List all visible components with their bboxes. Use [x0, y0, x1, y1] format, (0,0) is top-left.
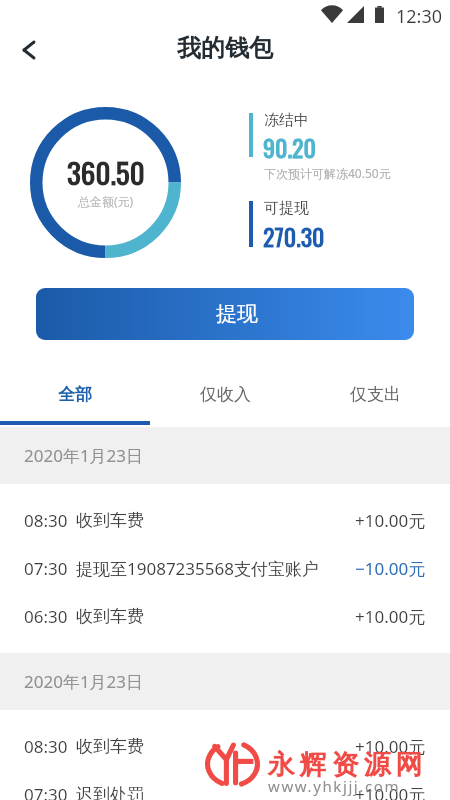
staticText: 仅支出	[350, 384, 401, 405]
button[interactable]: 提现	[36, 288, 414, 340]
staticText: 迟到处罚	[76, 784, 144, 800]
staticText: +10.00元	[355, 783, 426, 800]
button[interactable]: 06:30	[0, 592, 450, 640]
staticText: 可提现	[264, 199, 309, 218]
staticText: 360.50	[67, 150, 145, 193]
staticText: 冻结中	[264, 111, 309, 130]
button[interactable]: 08:30	[0, 496, 450, 544]
staticText: 90.20	[263, 129, 316, 165]
staticText: 仅收入	[200, 384, 251, 405]
button[interactable]: Back	[7, 28, 51, 72]
button[interactable]: 全部	[0, 368, 150, 421]
button[interactable]: 仅支出	[300, 368, 450, 421]
staticText: 下次预计可解冻40.50元	[264, 165, 391, 181]
staticText: +10.00元	[355, 509, 426, 532]
staticText: +10.00元	[355, 735, 426, 758]
button[interactable]: 07:30	[0, 544, 450, 592]
staticText: 提现	[216, 301, 258, 327]
staticText: 07:30	[24, 783, 68, 800]
staticText: 06:30	[24, 605, 68, 628]
staticText: 我的钱包	[177, 33, 273, 63]
button[interactable]: 07:30	[0, 770, 450, 800]
staticText: 07:30	[24, 557, 68, 580]
staticText: 08:30	[24, 509, 68, 532]
staticText: 2020年1月23日	[24, 670, 144, 693]
staticText: 08:30	[24, 735, 68, 758]
button[interactable]: 08:30	[0, 722, 450, 770]
staticText: www.yhkjjj.com	[268, 776, 401, 796]
button[interactable]: 仅收入	[150, 368, 300, 421]
staticText: 270.30	[263, 218, 325, 254]
staticText: −10.00元	[355, 557, 426, 580]
staticText: 12:30	[396, 4, 443, 29]
staticText: 全部	[58, 384, 92, 405]
staticText: 收到车费	[76, 736, 144, 757]
staticText: 总金额(元)	[78, 193, 134, 209]
staticText: 永辉资源网	[265, 748, 425, 782]
staticText: 收到车费	[76, 510, 144, 531]
staticText: 2020年1月23日	[24, 444, 144, 467]
staticText: 收到车费	[76, 606, 144, 627]
staticText: 提现至19087235568支付宝账户	[76, 557, 319, 580]
staticText: +10.00元	[355, 605, 426, 628]
